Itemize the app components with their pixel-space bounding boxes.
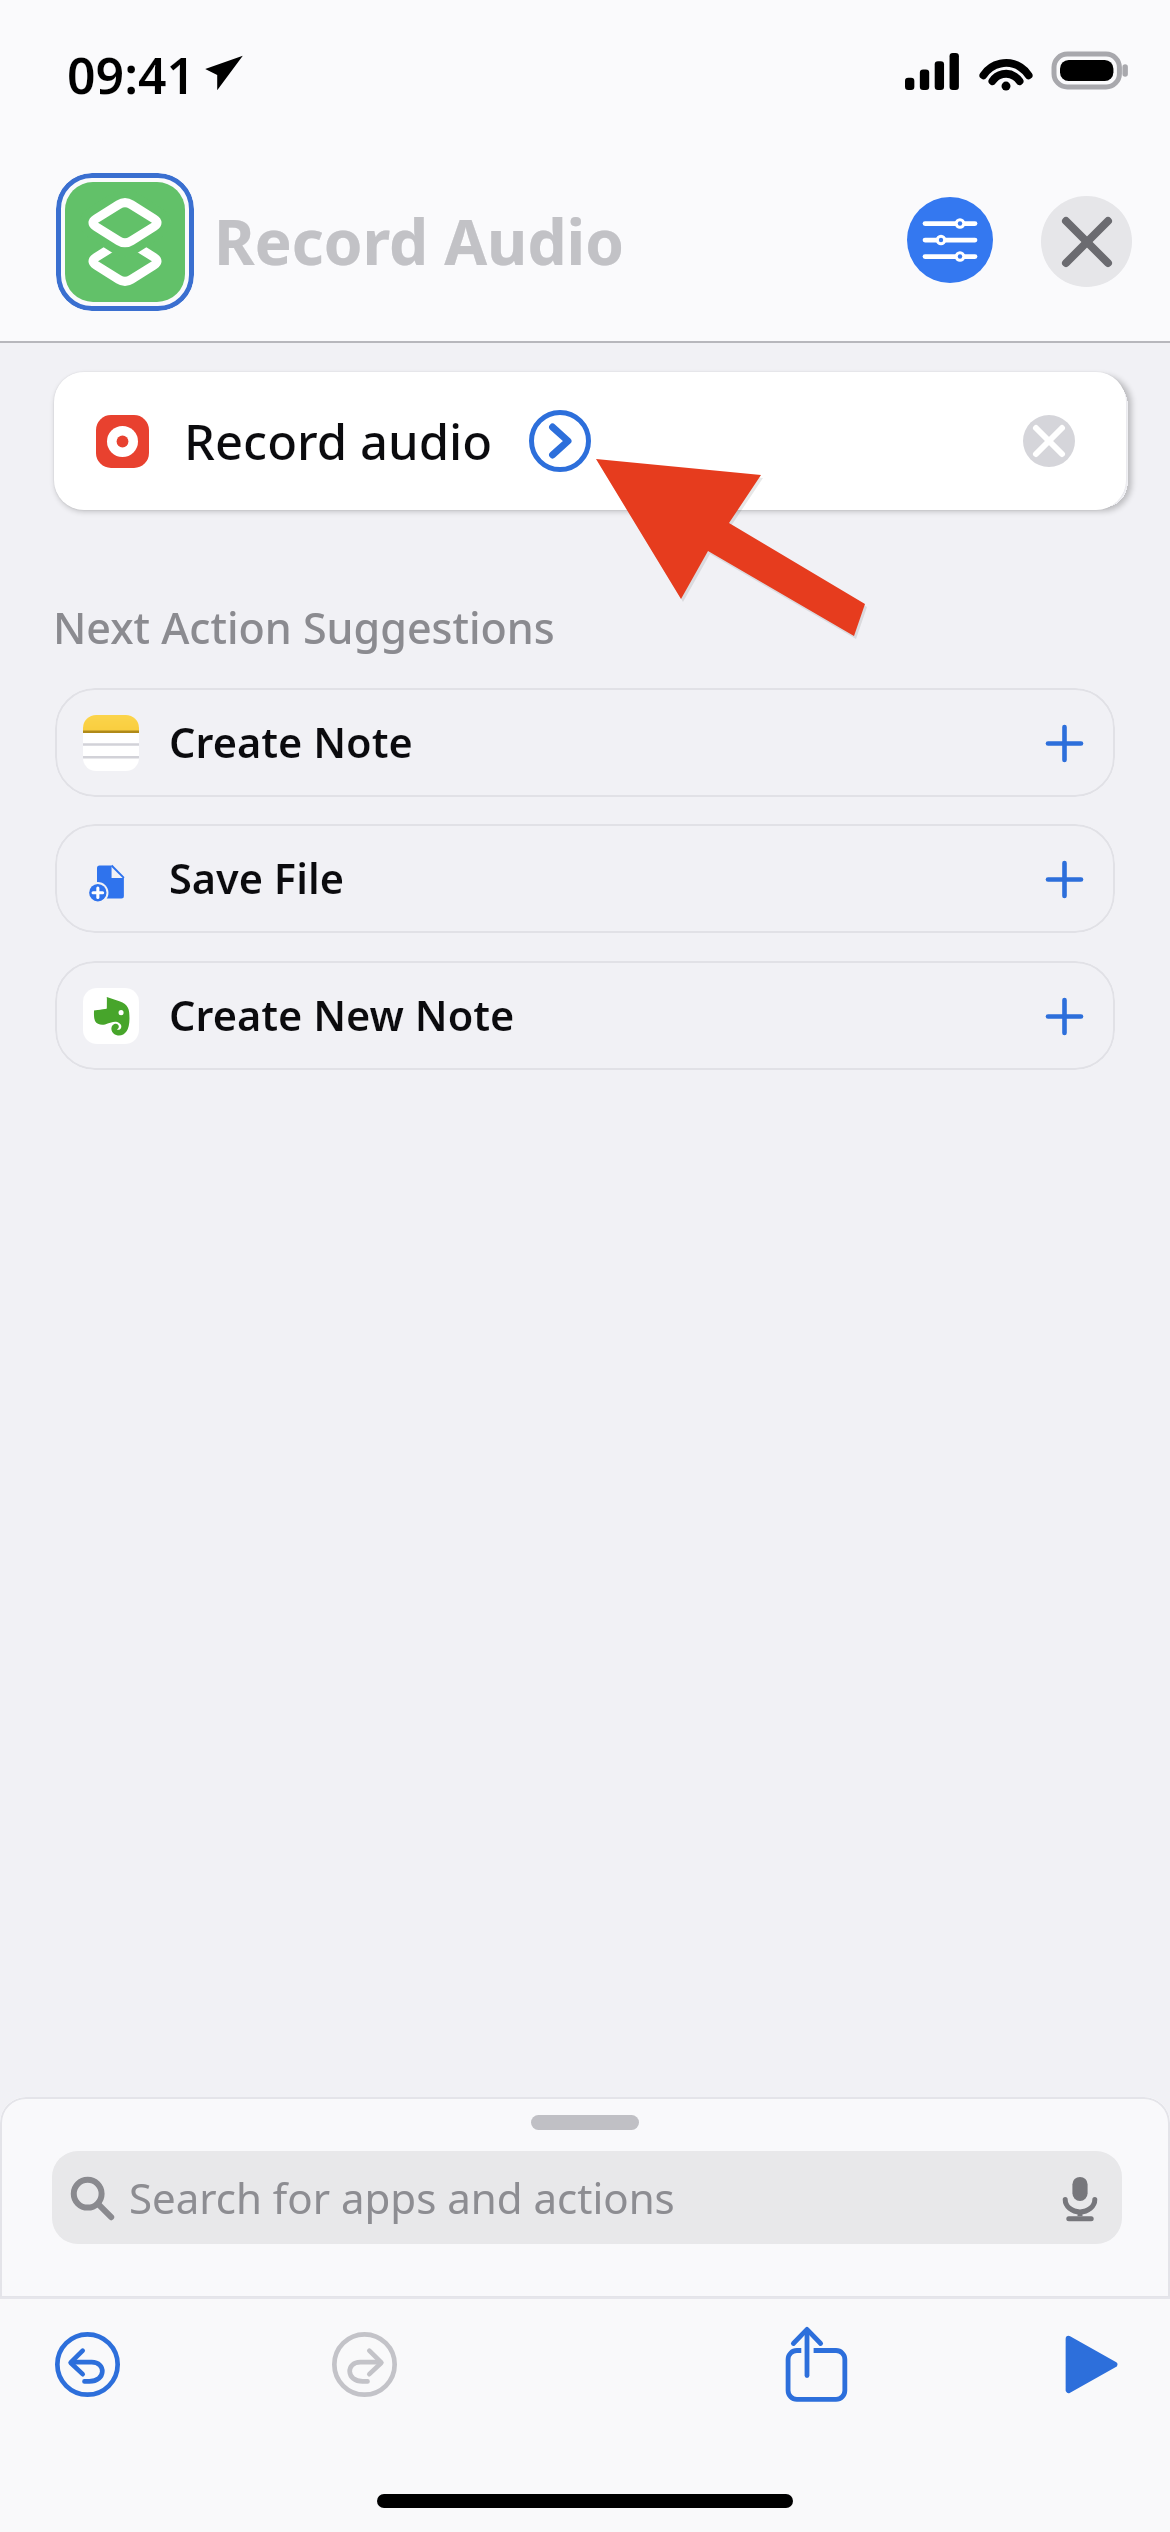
staticText: Create Note — [169, 714, 413, 771]
staticText: Create New Note — [169, 987, 515, 1044]
button[interactable]: Create Note — [55, 688, 1115, 797]
button[interactable]: Open action details — [528, 409, 592, 473]
button[interactable]: Shortcut icon — [65, 182, 185, 302]
staticText: Save File — [169, 850, 344, 907]
button[interactable]: Search for apps and actions — [52, 2151, 1122, 2244]
staticText: Record Audio — [214, 199, 624, 283]
button[interactable]: Play — [1047, 2320, 1135, 2408]
button[interactable]: Add Create New Note — [1036, 988, 1092, 1044]
button[interactable]: Redo — [320, 2320, 408, 2408]
button[interactable]: Undo — [43, 2320, 131, 2408]
button[interactable]: Add Save File — [1036, 851, 1092, 907]
staticText: 09:41 — [67, 41, 196, 109]
staticText: Record audio — [184, 408, 493, 475]
button[interactable]: Shortcut settings — [907, 197, 993, 283]
button[interactable]: Close — [1041, 196, 1132, 287]
staticText: Search for apps and actions — [129, 2169, 675, 2226]
button[interactable]: Remove action — [1023, 415, 1075, 467]
button[interactable]: Add Create Note — [1036, 715, 1092, 771]
button[interactable]: Share — [763, 2314, 851, 2402]
button[interactable]: Record audio — [54, 372, 1126, 510]
button[interactable]: Save File — [55, 824, 1115, 933]
button[interactable]: Create New Note — [55, 961, 1115, 1070]
staticText: Next Action Suggestions — [53, 598, 555, 657]
